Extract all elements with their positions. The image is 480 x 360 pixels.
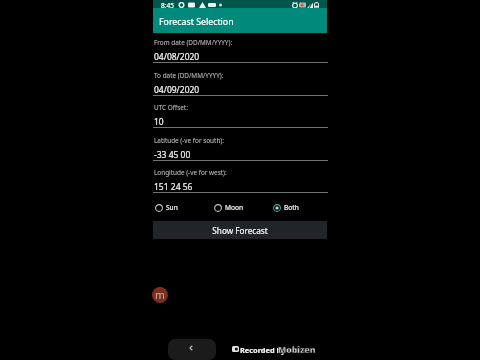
staticText: Longitude (-ve for west): — [154, 168, 227, 177]
button[interactable]: Latitude (-ve for south): — [153, 136, 328, 162]
staticText: 8:45 — [161, 1, 174, 10]
staticText: m — [155, 288, 165, 302]
button[interactable]: Show Forecast — [153, 221, 327, 239]
staticText: Sun — [166, 203, 178, 212]
staticText: Show Forecast — [212, 225, 268, 236]
staticText: 04/08/2020 — [154, 51, 200, 63]
button[interactable]: Sun — [154, 203, 178, 212]
staticText: 04/09/2020 — [154, 84, 200, 96]
button[interactable]: To date (DD/MM/YYYY): — [153, 71, 328, 97]
staticText: To date (DD/MM/YYYY): — [154, 71, 224, 80]
button[interactable]: UTC Offset: — [153, 103, 328, 129]
button[interactable]: Mobizen recorder — [152, 287, 168, 303]
button[interactable]: Back — [168, 339, 216, 360]
button[interactable]: Both — [272, 203, 299, 212]
staticText: UTC Offset: — [154, 103, 188, 112]
staticText: 10 — [154, 116, 164, 128]
staticText: Moon — [225, 203, 244, 212]
staticText: Forecast Selection — [159, 16, 234, 28]
staticText: Both — [284, 203, 299, 212]
button[interactable]: From date (DD/MM/YYYY): — [153, 38, 328, 64]
button[interactable]: Longitude (-ve for west): — [153, 168, 328, 194]
staticText: From date (DD/MM/YYYY): — [154, 38, 233, 47]
staticText: Mobizen — [278, 344, 316, 356]
staticText: -33 45 00 — [154, 149, 191, 161]
button[interactable]: Moon — [213, 203, 244, 212]
staticText: 151 24 56 — [154, 181, 193, 193]
staticText: Latitude (-ve for south): — [154, 136, 224, 145]
staticText: Mobizen — [278, 344, 316, 356]
staticText: Recorded by — [240, 345, 286, 355]
